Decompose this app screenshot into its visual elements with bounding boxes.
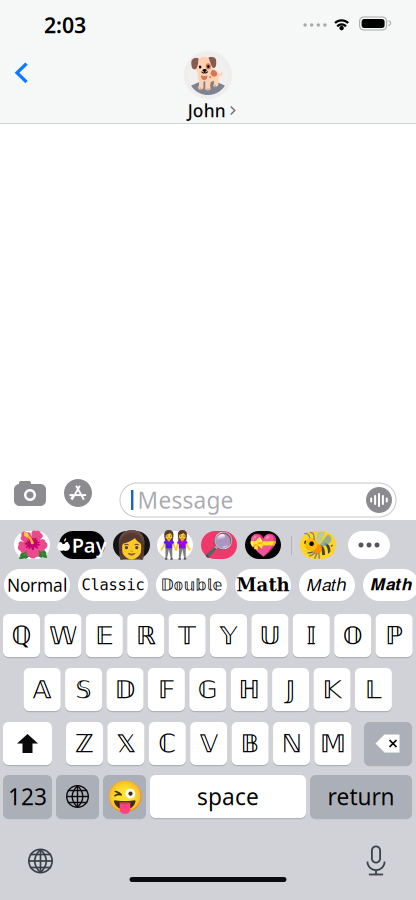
button[interactable]: 𝔹 bbox=[232, 722, 269, 765]
button[interactable]: Next keyboard bbox=[56, 775, 99, 818]
button[interactable]: 𝕃 bbox=[355, 668, 392, 711]
button[interactable]: 𝔻 bbox=[106, 668, 143, 711]
button[interactable]: 𝔻𝕠𝕦𝕓𝕝𝕖 bbox=[156, 569, 227, 601]
staticText: 🐕 bbox=[189, 56, 227, 91]
button[interactable]: Emoji bbox=[103, 775, 146, 818]
button[interactable]: Images bbox=[201, 531, 237, 559]
staticText: 𝑀𝑎𝑡ℎ bbox=[307, 575, 347, 595]
button[interactable]: Record audio message bbox=[366, 487, 392, 513]
button[interactable]: ℂ bbox=[149, 722, 186, 765]
staticText: 😜 bbox=[105, 779, 143, 814]
button[interactable]: Delete bbox=[364, 722, 412, 765]
button[interactable]: 123 bbox=[3, 775, 52, 818]
staticText: ℙ bbox=[385, 621, 403, 650]
button[interactable]: 🐕 bbox=[160, 51, 256, 117]
staticText: 𝕄 bbox=[320, 729, 346, 758]
staticText: 𝔹 bbox=[241, 729, 260, 758]
button[interactable]: 𝕍 bbox=[190, 722, 227, 765]
staticText: 𝕏 bbox=[116, 729, 136, 758]
button[interactable]: Shift bbox=[3, 722, 52, 765]
button[interactable]: 𝕐 bbox=[210, 614, 247, 657]
button[interactable]: Dictate bbox=[354, 838, 398, 882]
staticText: ℂ bbox=[158, 729, 176, 758]
button[interactable]: 𝕁 bbox=[272, 668, 309, 711]
button[interactable]: 𝔸 bbox=[24, 668, 61, 711]
button[interactable]: return bbox=[310, 775, 412, 818]
button[interactable]: Stickers bbox=[157, 531, 193, 559]
staticText: Classic bbox=[81, 576, 144, 594]
button[interactable]: ℝ bbox=[127, 614, 164, 657]
button[interactable]: Math bbox=[235, 569, 291, 601]
button[interactable]: 𝕌 bbox=[251, 614, 288, 657]
button[interactable]: iMessage apps bbox=[56, 471, 100, 515]
staticText: 🌺 bbox=[15, 530, 48, 560]
button[interactable]: ℙ bbox=[376, 614, 413, 657]
staticText: Pay bbox=[72, 532, 107, 558]
staticText: 🔎 bbox=[204, 531, 234, 559]
staticText: John bbox=[188, 99, 226, 122]
staticText: ℍ bbox=[238, 675, 260, 704]
button[interactable]: 𝑀𝑎𝑡ℎ bbox=[299, 569, 355, 601]
button[interactable]: 𝕀 bbox=[293, 614, 330, 657]
button[interactable]: 𝕋 bbox=[169, 614, 206, 657]
staticText: 𝕂 bbox=[322, 675, 341, 704]
staticText: 123 bbox=[8, 781, 47, 811]
button[interactable]: 𝕏 bbox=[107, 722, 144, 765]
button[interactable]: 𝔼 bbox=[86, 614, 123, 657]
button[interactable]: 𝕎 bbox=[44, 614, 81, 657]
button[interactable]: Classic bbox=[78, 569, 148, 601]
staticText: 𝕍 bbox=[200, 729, 218, 758]
button[interactable]: ℕ bbox=[273, 722, 310, 765]
staticText: 𝕊 bbox=[76, 675, 92, 704]
button[interactable]: 𝑴𝒂𝒕𝒉 bbox=[363, 569, 416, 601]
staticText: ℕ bbox=[281, 729, 301, 758]
staticText: 💝 bbox=[249, 532, 277, 558]
staticText: 𝔻 bbox=[114, 675, 135, 704]
staticText: 𝔻𝕠𝕦𝕓𝕝𝕖 bbox=[160, 576, 222, 594]
staticText: 𝔼 bbox=[95, 621, 113, 650]
staticText: Math bbox=[236, 574, 289, 595]
staticText: 𝕀 bbox=[306, 621, 316, 650]
staticText: 2:03 bbox=[44, 11, 86, 39]
staticText: 𝔸 bbox=[33, 675, 52, 704]
staticText: Message bbox=[137, 485, 233, 515]
button[interactable]: Camera bbox=[8, 471, 52, 515]
button[interactable]: ℚ bbox=[3, 614, 40, 657]
staticText: 𝕃 bbox=[365, 675, 382, 704]
button[interactable]: Memoji bbox=[113, 531, 150, 559]
staticText: ℝ bbox=[136, 621, 156, 650]
staticText: space bbox=[197, 781, 259, 811]
button[interactable]: 𝕂 bbox=[313, 668, 350, 711]
staticText: 𝔽 bbox=[158, 675, 175, 704]
button[interactable]: 𝔽 bbox=[148, 668, 185, 711]
button[interactable]: 𝕊 bbox=[65, 668, 102, 711]
staticText: ℤ bbox=[75, 729, 94, 758]
button[interactable]: Photos bbox=[14, 531, 50, 559]
staticText: 𝑴𝒂𝒕𝒉 bbox=[370, 576, 411, 594]
staticText: 👭 bbox=[158, 530, 191, 560]
button[interactable]: Normal bbox=[4, 569, 70, 601]
staticText: 𝕋 bbox=[178, 621, 196, 650]
staticText: 🐝 bbox=[301, 530, 334, 560]
staticText: Normal bbox=[7, 573, 67, 596]
staticText: 𝕐 bbox=[219, 621, 237, 650]
staticText: ℚ bbox=[11, 621, 31, 650]
button[interactable]: Apple Pay bbox=[59, 531, 105, 559]
button[interactable]: 𝔾 bbox=[189, 668, 226, 711]
button[interactable]: Emoji keyboard bbox=[18, 839, 62, 883]
button[interactable]: Digital Touch bbox=[245, 531, 281, 559]
button[interactable]: ℤ bbox=[66, 722, 103, 765]
button[interactable]: More bbox=[348, 531, 390, 559]
button[interactable]: ℍ bbox=[231, 668, 268, 711]
button[interactable]: Music bbox=[300, 531, 336, 559]
staticText: 𝕁 bbox=[286, 675, 296, 704]
button[interactable]: 𝕆 bbox=[334, 614, 371, 657]
button[interactable]: Back bbox=[0, 51, 44, 95]
button[interactable]: space bbox=[150, 775, 306, 818]
staticText: 👩 bbox=[115, 530, 148, 560]
staticText: 𝕌 bbox=[259, 621, 280, 650]
staticText: 𝕆 bbox=[343, 621, 363, 650]
staticText: 𝔾 bbox=[198, 675, 218, 704]
staticText: 𝕎 bbox=[49, 621, 77, 650]
button[interactable]: 𝕄 bbox=[314, 722, 351, 765]
